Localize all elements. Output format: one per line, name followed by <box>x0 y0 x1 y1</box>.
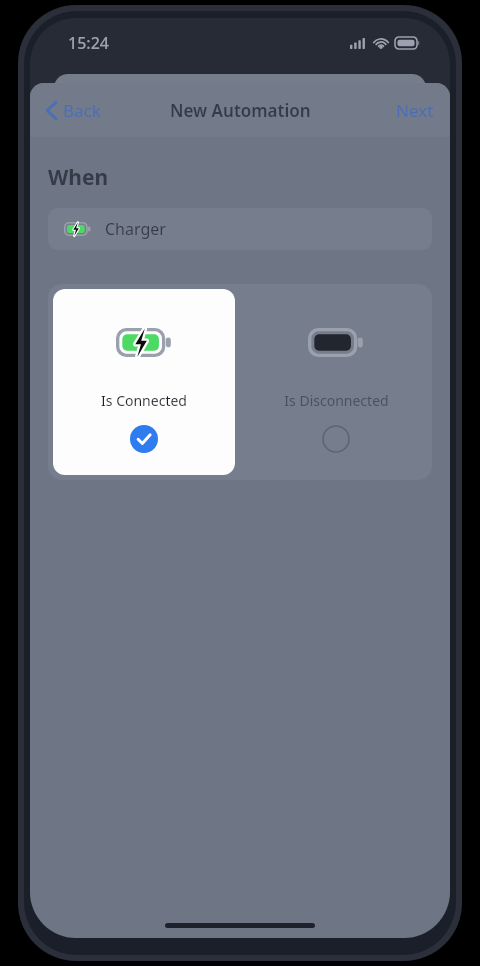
staticText: Is Connected <box>101 391 187 410</box>
staticText: New Automation <box>170 99 311 122</box>
staticText: When <box>48 163 109 192</box>
button[interactable]: Charger <box>48 208 432 250</box>
staticText: Is Disconnected <box>284 391 389 410</box>
button[interactable]: Back <box>38 93 109 128</box>
staticText: Back <box>63 99 101 122</box>
staticText: Charger <box>105 218 166 240</box>
staticText: 15:24 <box>68 32 109 54</box>
button[interactable]: Is Disconnected <box>245 289 427 475</box>
button[interactable]: Next <box>388 93 442 128</box>
staticText: Next <box>396 99 434 122</box>
button[interactable]: Is Connected <box>53 289 235 475</box>
